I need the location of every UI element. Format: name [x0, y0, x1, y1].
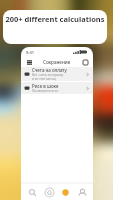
staticText: и за этот месяц [32, 77, 56, 81]
button[interactable]: Search [25, 185, 39, 199]
button[interactable]: 200+ different calculations [3, 10, 107, 44]
button[interactable]: Риск в шоке [21, 82, 93, 94]
button[interactable]: Stats [58, 185, 72, 199]
staticText: Сохранение [43, 59, 71, 65]
staticText: Посмотреть итог [32, 89, 59, 93]
staticText: Счета на оплату [32, 67, 67, 73]
button[interactable]: Filter [81, 58, 89, 66]
button[interactable]: Menu [25, 58, 33, 66]
staticText: Риск в шоке [32, 83, 59, 89]
staticText: 9:41 [26, 50, 34, 55]
button[interactable]: Profile [75, 185, 89, 199]
staticText: Все счета за период [32, 73, 64, 77]
button[interactable]: Home [42, 185, 56, 199]
staticText: 200+ different calculations [5, 14, 105, 24]
button[interactable]: Счета на оплату [21, 67, 93, 81]
